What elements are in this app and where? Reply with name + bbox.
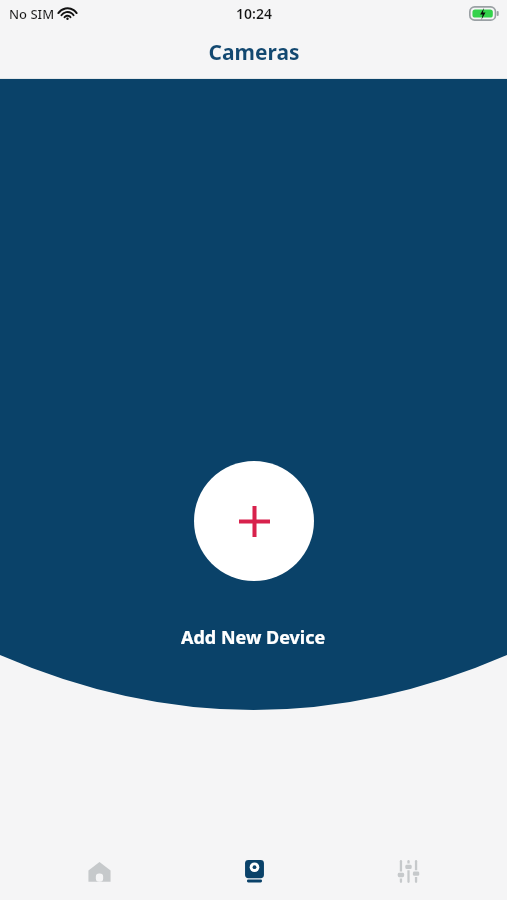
staticText: No SIM: [9, 5, 55, 23]
button[interactable]: Home: [44, 842, 154, 900]
button[interactable]: Add New Device: [194, 461, 314, 581]
button[interactable]: Cameras: [199, 842, 309, 900]
button[interactable]: Settings: [353, 842, 463, 900]
staticText: Add New Device: [181, 625, 326, 650]
staticText: 10:24: [236, 4, 272, 23]
staticText: Cameras: [208, 38, 300, 67]
